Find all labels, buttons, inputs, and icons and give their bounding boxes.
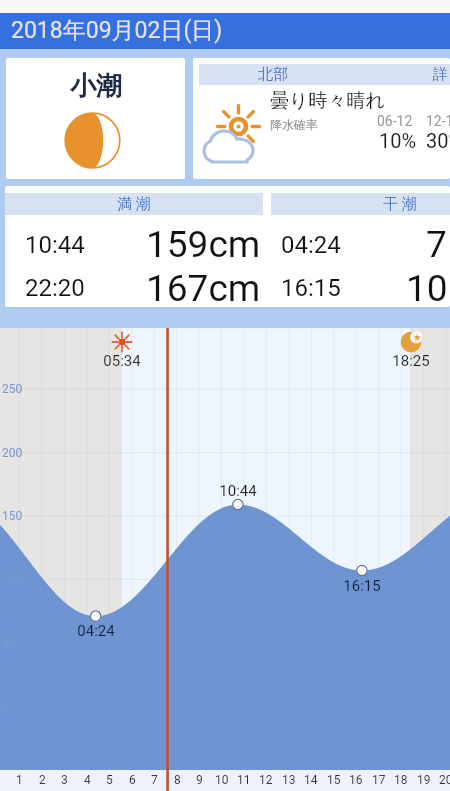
staticText: 250 <box>2 382 23 396</box>
staticText: 3 <box>61 773 68 787</box>
button[interactable]: 2018年09月02日(日) <box>0 13 450 49</box>
staticText: 10 <box>215 773 229 787</box>
staticText: 6 <box>129 773 136 787</box>
button[interactable]: 北部 <box>193 58 450 179</box>
staticText: 7 <box>426 223 447 266</box>
other: Sunrise <box>112 332 132 352</box>
staticText: 10:44 <box>198 482 278 500</box>
staticText: 満 潮 <box>117 195 151 214</box>
staticText: 50 <box>2 636 16 650</box>
staticText: 北部 <box>258 65 288 84</box>
staticText: 04:24 <box>56 622 136 640</box>
staticText: 150 <box>2 509 23 523</box>
staticText: 降水確率 <box>270 117 318 132</box>
staticText: 8 <box>174 773 181 787</box>
staticText: 200 <box>2 446 23 460</box>
button[interactable]: 小潮 <box>6 58 185 179</box>
staticText: 16:15 <box>322 577 402 595</box>
staticText: 詳 <box>433 65 448 84</box>
staticText: 18 <box>394 773 408 787</box>
staticText: 9 <box>196 773 203 787</box>
staticText: 13 <box>282 773 296 787</box>
staticText: 20 <box>439 773 450 787</box>
staticText: 5 <box>106 773 113 787</box>
staticText: 14 <box>304 773 318 787</box>
staticText: 16:15 <box>281 274 341 302</box>
staticText: 16 <box>349 773 363 787</box>
staticText: 2 <box>39 773 46 787</box>
staticText: 22:20 <box>25 274 85 302</box>
staticText: 06-12 <box>377 113 413 129</box>
staticText: 04:24 <box>281 231 341 259</box>
button[interactable]: 満 潮 <box>5 186 450 307</box>
staticText: 18:25 <box>371 352 450 370</box>
staticText: 11 <box>237 773 251 787</box>
staticText: 167cm <box>146 267 261 307</box>
staticText: 4 <box>84 773 91 787</box>
staticText: 1 <box>16 773 23 787</box>
staticText: 2018年09月02日(日) <box>11 16 223 45</box>
staticText: 曇り時々晴れ <box>270 89 385 113</box>
staticText: 12 <box>259 773 273 787</box>
staticText: 10% <box>379 129 417 152</box>
staticText: 15 <box>327 773 341 787</box>
staticText: 159cm <box>146 223 261 266</box>
other: Sunset <box>400 331 422 353</box>
staticText: 小潮 <box>70 70 122 103</box>
staticText: 7 <box>151 773 158 787</box>
staticText: 30% <box>426 129 450 152</box>
staticText: 12-1 <box>426 113 450 129</box>
staticText: 17 <box>372 773 386 787</box>
staticText: 10:44 <box>25 231 85 259</box>
staticText: 19 <box>417 773 431 787</box>
staticText: 100 <box>2 572 23 586</box>
staticText: 10 <box>406 267 448 307</box>
staticText: 0 <box>2 699 9 713</box>
staticText: 05:34 <box>82 352 162 370</box>
staticText: 干 潮 <box>383 195 417 214</box>
